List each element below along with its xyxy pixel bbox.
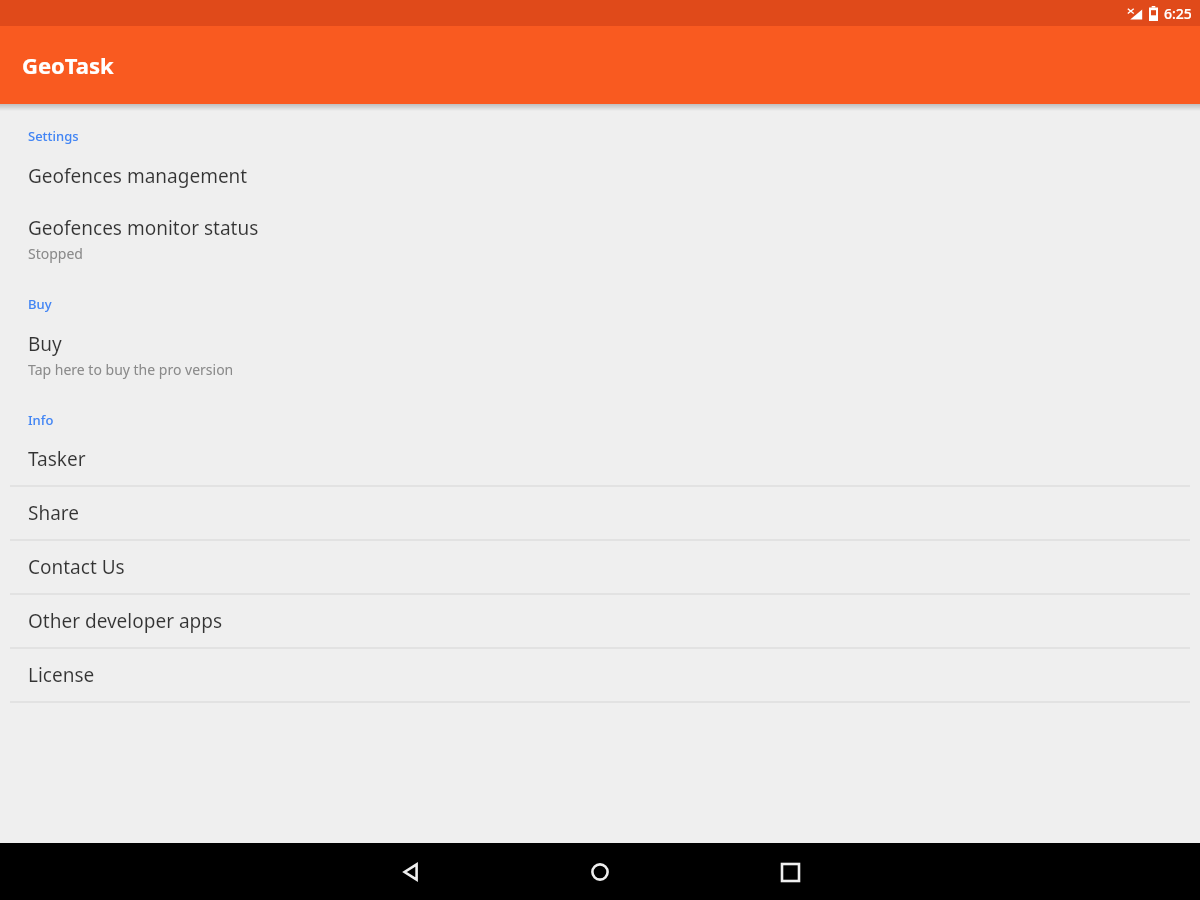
staticText: Tasker <box>28 446 86 472</box>
button[interactable]: Home <box>576 848 624 896</box>
staticText: Buy <box>28 295 52 313</box>
button[interactable]: Geofences monitor status <box>0 207 1200 277</box>
staticText: Other developer apps <box>28 608 223 634</box>
staticText: Geofences monitor status <box>28 215 259 241</box>
staticText: GeoTask <box>22 50 114 80</box>
button[interactable]: Geofences management <box>0 149 1200 207</box>
staticText: Settings <box>28 127 79 145</box>
staticText: License <box>28 662 95 688</box>
staticText: Geofences management <box>28 163 248 189</box>
button[interactable]: Other developer apps <box>0 595 1200 647</box>
button[interactable]: Contact Us <box>0 541 1200 593</box>
button[interactable]: Back <box>387 848 435 896</box>
staticText: Buy <box>28 331 62 357</box>
staticText: Contact Us <box>28 554 125 580</box>
staticText: Tap here to buy the pro version <box>28 360 234 379</box>
staticText: 6:25 <box>1164 4 1192 23</box>
staticText: Share <box>28 500 80 526</box>
button[interactable]: Recents <box>766 848 814 896</box>
button[interactable]: Tasker <box>0 433 1200 485</box>
staticText: Info <box>28 411 54 429</box>
button[interactable]: License <box>0 649 1200 701</box>
staticText: Stopped <box>28 244 83 263</box>
button[interactable]: Share <box>0 487 1200 539</box>
button[interactable]: Buy <box>0 317 1200 393</box>
